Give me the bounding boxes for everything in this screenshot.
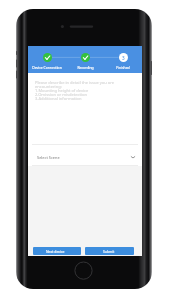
- button[interactable]: 3: [104, 46, 142, 70]
- staticText: Recording: [77, 65, 94, 70]
- staticText: Next device: [46, 249, 65, 254]
- staticText: 3: [122, 55, 125, 61]
- button[interactable]: Next device: [33, 247, 81, 255]
- button[interactable]: Select Scene: [28, 145, 142, 165]
- button[interactable]: Device Connection: [28, 46, 66, 70]
- staticText: Select Scene: [37, 155, 60, 160]
- staticText: Finished: [116, 65, 130, 70]
- staticText: Device Connection: [32, 65, 62, 70]
- button[interactable]: Submit: [85, 247, 134, 255]
- staticText: Submit: [103, 249, 115, 254]
- staticText: Please describe in detail the issue you …: [35, 80, 115, 102]
- button[interactable]: Recording: [66, 46, 104, 70]
